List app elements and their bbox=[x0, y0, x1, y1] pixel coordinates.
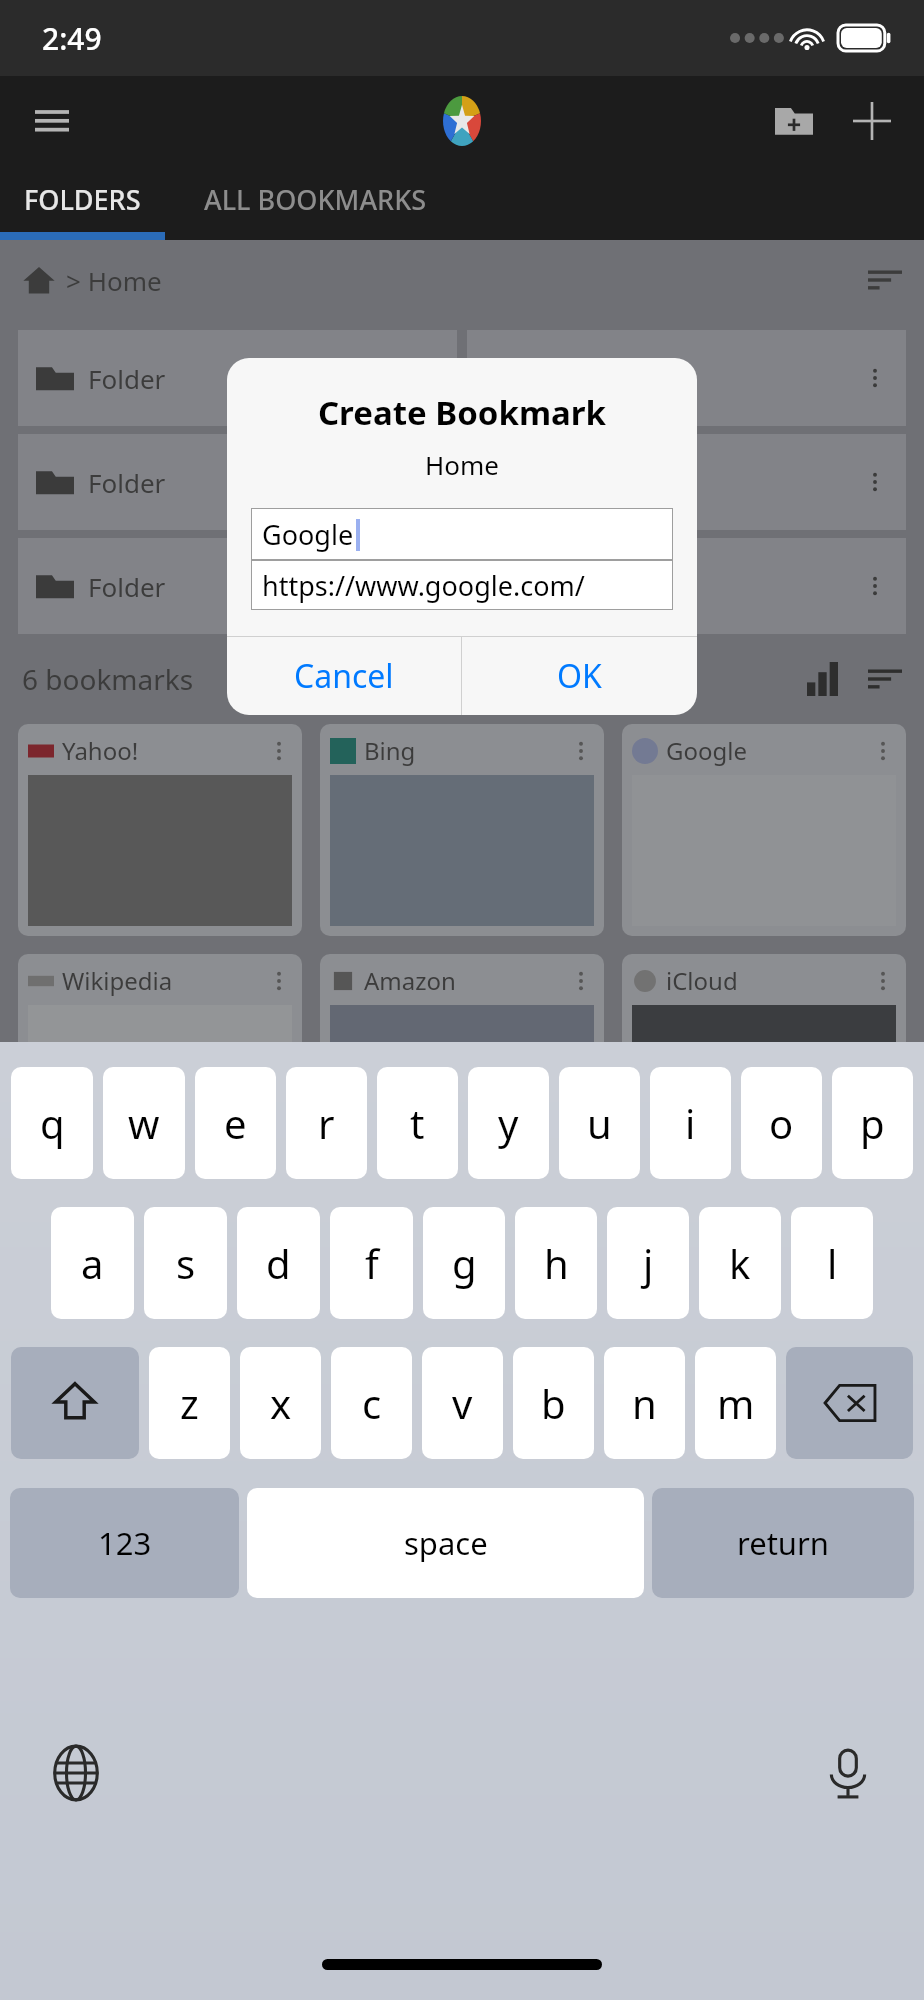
staticText: b bbox=[541, 1376, 566, 1430]
button[interactable]: Google bbox=[622, 724, 906, 936]
button[interactable]: p bbox=[832, 1067, 913, 1179]
staticText: FOLDERS bbox=[24, 181, 141, 218]
button[interactable]: k bbox=[699, 1207, 781, 1319]
staticText: w bbox=[128, 1096, 160, 1150]
button[interactable]: Amazon bbox=[320, 954, 604, 1166]
staticText: https://www.google.com/ bbox=[262, 567, 585, 604]
button[interactable]: s bbox=[144, 1207, 227, 1319]
button[interactable]: Change keyboard language bbox=[36, 1733, 116, 1813]
staticText: p bbox=[860, 1096, 885, 1150]
button[interactable]: Backspace bbox=[786, 1347, 913, 1459]
staticText: 6 bookmarks bbox=[22, 660, 194, 698]
button[interactable]: return bbox=[652, 1488, 914, 1598]
staticText: t bbox=[410, 1096, 425, 1150]
button[interactable]: m bbox=[695, 1347, 776, 1459]
button[interactable]: a bbox=[51, 1207, 134, 1319]
button[interactable]: ALL BOOKMARKS bbox=[165, 166, 465, 232]
button[interactable]: 123 bbox=[10, 1488, 239, 1598]
button[interactable]: Google bbox=[252, 509, 672, 559]
button[interactable]: l bbox=[791, 1207, 873, 1319]
staticText: i bbox=[685, 1096, 696, 1150]
button[interactable]: Dictation bbox=[808, 1733, 888, 1813]
button[interactable]: FOLDERS bbox=[0, 166, 165, 232]
button[interactable]: Folder bbox=[18, 330, 457, 426]
button[interactable]: e bbox=[195, 1067, 276, 1179]
staticText: Bing bbox=[364, 734, 416, 767]
staticText: return bbox=[737, 1522, 829, 1564]
staticText: space bbox=[404, 1522, 488, 1564]
button[interactable]: z bbox=[149, 1347, 230, 1459]
button[interactable]: Cancel bbox=[227, 637, 461, 715]
staticText: Wikipedia bbox=[62, 964, 173, 997]
staticText: l bbox=[827, 1236, 838, 1290]
staticText: Cancel bbox=[294, 654, 394, 698]
button[interactable]: u bbox=[559, 1067, 640, 1179]
button[interactable]: Menu bbox=[24, 93, 80, 149]
staticText: Amazon bbox=[364, 964, 456, 997]
staticText: Google bbox=[666, 734, 747, 767]
staticText: Folder bbox=[88, 361, 166, 396]
button[interactable]: q bbox=[11, 1067, 93, 1179]
staticText: d bbox=[266, 1236, 291, 1290]
staticText: r bbox=[318, 1096, 335, 1150]
button[interactable]: https://www.google.com/ bbox=[252, 561, 672, 609]
button[interactable]: n bbox=[604, 1347, 685, 1459]
staticText: > Home bbox=[66, 263, 162, 298]
button[interactable]: c bbox=[331, 1347, 412, 1459]
button[interactable]: h bbox=[515, 1207, 597, 1319]
staticText: 123 bbox=[98, 1522, 152, 1564]
button[interactable]: Folder bbox=[467, 330, 906, 426]
staticText: g bbox=[452, 1236, 477, 1290]
button[interactable]: d bbox=[237, 1207, 320, 1319]
staticText: q bbox=[40, 1096, 65, 1150]
button[interactable]: y bbox=[468, 1067, 549, 1179]
staticText: Folder bbox=[88, 465, 166, 500]
staticText: o bbox=[769, 1096, 794, 1150]
button[interactable]: Folder bbox=[467, 538, 906, 634]
staticText: Folder bbox=[88, 569, 166, 604]
button[interactable]: Bing bbox=[320, 724, 604, 936]
staticText: f bbox=[365, 1236, 379, 1290]
button[interactable]: g bbox=[423, 1207, 505, 1319]
staticText: e bbox=[224, 1096, 247, 1150]
staticText: Home bbox=[227, 447, 697, 482]
button[interactable]: Wikipedia bbox=[18, 954, 302, 1166]
button[interactable]: v bbox=[422, 1347, 503, 1459]
button[interactable]: Shift bbox=[11, 1347, 139, 1459]
staticText: s bbox=[176, 1236, 196, 1290]
button[interactable]: f bbox=[330, 1207, 413, 1319]
button[interactable]: i bbox=[650, 1067, 731, 1179]
button[interactable]: Yahoo! bbox=[18, 724, 302, 936]
staticText: 2:49 bbox=[42, 18, 102, 59]
button[interactable]: j bbox=[607, 1207, 689, 1319]
staticText: n bbox=[632, 1376, 657, 1430]
staticText: c bbox=[362, 1376, 382, 1430]
staticText: j bbox=[643, 1236, 654, 1290]
staticText: OK bbox=[557, 654, 602, 698]
button[interactable]: Folder bbox=[467, 434, 906, 530]
staticText: a bbox=[81, 1236, 104, 1290]
button[interactable]: r bbox=[286, 1067, 367, 1179]
button[interactable]: Folder bbox=[18, 538, 457, 634]
button[interactable]: Add bookmark bbox=[844, 93, 900, 149]
staticText: ALL BOOKMARKS bbox=[204, 181, 427, 218]
staticText: iCloud bbox=[666, 964, 738, 997]
button[interactable]: OK bbox=[462, 637, 697, 715]
staticText: x bbox=[270, 1376, 292, 1430]
staticText: h bbox=[544, 1236, 569, 1290]
button[interactable]: w bbox=[103, 1067, 185, 1179]
button[interactable]: t bbox=[377, 1067, 458, 1179]
button[interactable]: o bbox=[741, 1067, 822, 1179]
button[interactable]: iCloud bbox=[622, 954, 906, 1166]
button[interactable]: Folder bbox=[18, 434, 457, 530]
button[interactable]: b bbox=[513, 1347, 594, 1459]
staticText: m bbox=[717, 1376, 755, 1430]
staticText: u bbox=[587, 1096, 612, 1150]
button[interactable]: space bbox=[247, 1488, 644, 1598]
button[interactable]: x bbox=[240, 1347, 321, 1459]
button[interactable]: New folder bbox=[766, 93, 822, 149]
staticText: y bbox=[498, 1096, 519, 1150]
staticText: Folder bbox=[537, 569, 615, 604]
staticText: Google bbox=[262, 516, 354, 553]
